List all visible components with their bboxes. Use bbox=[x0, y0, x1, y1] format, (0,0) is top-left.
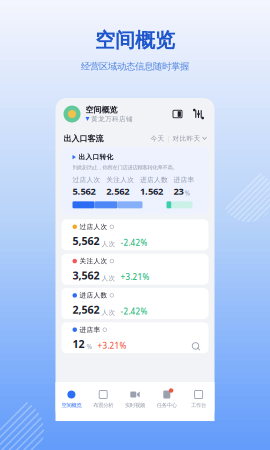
button[interactable]: 任务中心 bbox=[151, 382, 183, 421]
button[interactable]: 进店率 bbox=[61, 322, 208, 353]
staticText: 12 bbox=[72, 337, 84, 351]
button[interactable]: 筛选 bbox=[190, 106, 206, 122]
staticText: 2,562 bbox=[72, 302, 99, 317]
staticText: 空间概览 bbox=[61, 402, 81, 409]
button[interactable]: 今天 bbox=[150, 134, 206, 143]
staticText: 今天 bbox=[150, 134, 164, 143]
button[interactable]: 空间概览 bbox=[55, 382, 87, 421]
staticText: % bbox=[86, 342, 92, 351]
staticText: -2.42% bbox=[120, 237, 147, 248]
staticText: 出入口转化 bbox=[78, 153, 113, 161]
staticText: 进店率 bbox=[79, 326, 100, 334]
staticText: % bbox=[185, 188, 191, 197]
staticText: 人次 bbox=[101, 308, 115, 317]
staticText: 出入口客流 bbox=[63, 134, 103, 143]
button[interactable]: 实时视频 bbox=[119, 382, 151, 421]
staticText: | bbox=[166, 134, 170, 143]
staticText: 实时视频 bbox=[125, 402, 145, 409]
staticText: 进店人数 bbox=[140, 176, 168, 184]
staticText: 人次 bbox=[101, 274, 115, 282]
staticText: 2.562 bbox=[106, 185, 129, 197]
staticText: 过店人次 bbox=[72, 176, 100, 184]
staticText: -2.42% bbox=[120, 306, 147, 317]
button[interactable]: 关注人次 bbox=[61, 254, 208, 285]
staticText: 关注人次 bbox=[79, 257, 107, 265]
staticText: +3.21% bbox=[97, 340, 126, 351]
button[interactable]: 工作台 bbox=[183, 382, 214, 421]
button[interactable]: 布置分析 bbox=[87, 382, 119, 421]
staticText: 黄龙万科店铺 bbox=[91, 115, 133, 123]
staticText: 关注人次 bbox=[106, 176, 134, 184]
button[interactable]: 视图切换 bbox=[169, 106, 185, 122]
staticText: 到此刻为止，你所在门店进店顾客转化率不高。 bbox=[72, 164, 177, 171]
staticText: 空间概览 bbox=[85, 105, 117, 115]
staticText: +3.21% bbox=[120, 272, 149, 282]
staticText: 进店人数 bbox=[79, 291, 107, 299]
staticText: 进店率 bbox=[174, 176, 195, 184]
staticText: 过店人次 bbox=[79, 223, 107, 231]
button[interactable]: 过店人次 bbox=[61, 219, 208, 250]
staticText: 5.562 bbox=[72, 185, 95, 197]
staticText: 5,562 bbox=[72, 234, 99, 248]
staticText: 空间概览 bbox=[95, 28, 175, 53]
staticText: 经营区域动态信息随时掌握 bbox=[81, 61, 189, 72]
staticText: 3,562 bbox=[72, 268, 99, 282]
staticText: 1.562 bbox=[140, 185, 163, 197]
staticText: 对比昨天 bbox=[172, 134, 200, 143]
button[interactable]: 进店人数 bbox=[61, 288, 208, 319]
staticText: 工作台 bbox=[191, 402, 206, 409]
staticText: 人次 bbox=[101, 240, 115, 248]
staticText: 任务中心 bbox=[157, 402, 177, 409]
staticText: 布置分析 bbox=[93, 402, 113, 409]
staticText: 23 bbox=[174, 185, 184, 197]
